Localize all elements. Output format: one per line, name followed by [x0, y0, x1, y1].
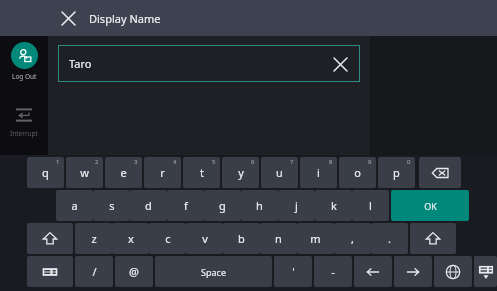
- staticText: s: [109, 198, 115, 213]
- button[interactable]: a: [56, 190, 93, 221]
- staticText: 1: [56, 158, 60, 166]
- staticText: a: [71, 198, 78, 213]
- staticText: 0: [407, 158, 411, 166]
- staticText: x: [128, 231, 134, 246]
- staticText: Taro: [69, 56, 92, 71]
- button[interactable]: Taro: [58, 45, 360, 82]
- staticText: Interrupt: [10, 129, 38, 138]
- staticText: OK: [424, 200, 437, 212]
- button[interactable]: d: [130, 190, 167, 221]
- button[interactable]: y: [222, 157, 259, 188]
- button[interactable]: g: [204, 190, 241, 221]
- button[interactable]: j: [278, 190, 315, 221]
- staticText: m: [310, 231, 321, 246]
- staticText: o: [354, 165, 361, 180]
- staticText: g: [219, 198, 226, 213]
- staticText: t: [200, 165, 204, 180]
- staticText: 9: [368, 158, 372, 166]
- button[interactable]: Interrupt: [0, 105, 48, 138]
- button[interactable]: r: [144, 157, 181, 188]
- staticText: @: [129, 264, 139, 279]
- staticText: l: [369, 198, 372, 213]
- button[interactable]: Backspace: [419, 157, 461, 188]
- staticText: 5: [212, 158, 216, 166]
- button[interactable]: l: [352, 190, 389, 221]
- staticText: q: [42, 165, 49, 180]
- button[interactable]: q: [27, 157, 64, 188]
- button[interactable]: ': [274, 256, 312, 287]
- staticText: ': [292, 264, 295, 279]
- staticText: d: [145, 198, 152, 213]
- button[interactable]: x: [112, 223, 149, 254]
- button[interactable]: Log Out: [0, 42, 48, 81]
- button[interactable]: u: [261, 157, 298, 188]
- staticText: 7: [290, 158, 294, 166]
- staticText: /: [92, 264, 97, 279]
- button[interactable]: b: [223, 223, 260, 254]
- staticText: w: [80, 165, 89, 180]
- button[interactable]: m: [297, 223, 334, 254]
- button[interactable]: Left: [354, 256, 392, 287]
- staticText: Log Out: [12, 72, 37, 81]
- button[interactable]: Shift: [27, 223, 73, 254]
- staticText: 8: [329, 158, 333, 166]
- button[interactable]: h: [241, 190, 278, 221]
- staticText: y: [238, 165, 244, 180]
- button[interactable]: -: [314, 256, 352, 287]
- button[interactable]: ,: [334, 223, 371, 254]
- button[interactable]: z: [75, 223, 112, 254]
- staticText: v: [202, 231, 208, 246]
- staticText: b: [238, 231, 245, 246]
- button[interactable]: @: [115, 256, 153, 287]
- staticText: Display Name: [89, 11, 161, 26]
- button[interactable]: Close: [55, 5, 81, 31]
- staticText: Space: [201, 266, 226, 278]
- button[interactable]: n: [260, 223, 297, 254]
- button[interactable]: w: [66, 157, 103, 188]
- button[interactable]: i: [300, 157, 337, 188]
- staticText: 2: [95, 158, 99, 166]
- staticText: 6: [251, 158, 255, 166]
- staticText: 4: [173, 158, 177, 166]
- staticText: f: [184, 198, 188, 213]
- staticText: e: [120, 165, 127, 180]
- button[interactable]: f: [167, 190, 204, 221]
- button[interactable]: Symbols: [27, 256, 73, 287]
- button[interactable]: Clear text: [326, 50, 354, 78]
- staticText: p: [393, 165, 400, 180]
- button[interactable]: Space: [155, 256, 272, 287]
- button[interactable]: /: [75, 256, 113, 287]
- button[interactable]: v: [186, 223, 223, 254]
- button[interactable]: Language: [434, 256, 472, 287]
- button[interactable]: .: [371, 223, 408, 254]
- staticText: -: [331, 264, 335, 279]
- staticText: k: [331, 198, 337, 213]
- button[interactable]: c: [149, 223, 186, 254]
- button[interactable]: OK: [391, 190, 469, 221]
- button[interactable]: Hide keyboard: [474, 256, 497, 287]
- button[interactable]: t: [183, 157, 220, 188]
- button[interactable]: Expand: [29, 264, 45, 280]
- staticText: ,: [351, 231, 354, 246]
- button[interactable]: p: [378, 157, 415, 188]
- staticText: i: [317, 165, 320, 180]
- button[interactable]: e: [105, 157, 142, 188]
- staticText: j: [295, 198, 298, 213]
- staticText: n: [275, 231, 282, 246]
- staticText: u: [276, 165, 283, 180]
- staticText: c: [165, 231, 171, 246]
- staticText: .: [388, 231, 391, 246]
- button[interactable]: o: [339, 157, 376, 188]
- staticText: 3: [134, 158, 138, 166]
- button[interactable]: Shift: [410, 223, 456, 254]
- button[interactable]: Right: [394, 256, 432, 287]
- button[interactable]: k: [315, 190, 352, 221]
- staticText: z: [91, 231, 97, 246]
- staticText: r: [160, 165, 165, 180]
- staticText: h: [256, 198, 263, 213]
- button[interactable]: s: [93, 190, 130, 221]
